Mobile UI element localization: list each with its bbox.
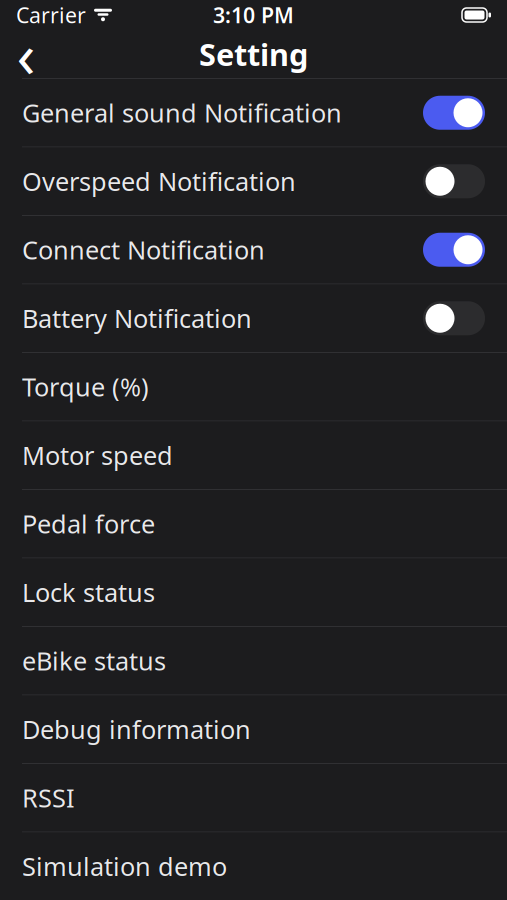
button[interactable]: RSSI xyxy=(0,764,507,831)
button[interactable]: Torque (%) xyxy=(0,353,507,420)
staticText: eBike status xyxy=(22,644,166,677)
staticText: 3:10 PM xyxy=(213,1,294,29)
button[interactable]: Connect Notification xyxy=(0,216,507,283)
button[interactable]: General sound Notification xyxy=(0,79,507,146)
staticText: Lock status xyxy=(22,575,155,609)
button[interactable]: eBike status xyxy=(0,627,507,694)
staticText: ‹ xyxy=(16,13,35,95)
button[interactable]: Debug information xyxy=(0,695,507,763)
staticText: Setting xyxy=(199,34,308,74)
staticText: Overspeed Notification xyxy=(22,164,296,198)
button[interactable]: Overspeed Notification xyxy=(0,147,507,215)
staticText: General sound Notification xyxy=(22,96,342,129)
staticText: Pedal force xyxy=(22,507,155,540)
staticText: Torque (%) xyxy=(22,370,149,403)
button[interactable]: Simulation demo xyxy=(0,832,507,900)
staticText: RSSI xyxy=(22,781,75,814)
staticText: Debug information xyxy=(22,712,251,746)
staticText: Carrier xyxy=(16,1,86,29)
button[interactable]: Battery Notification xyxy=(0,284,507,352)
staticText: Simulation demo xyxy=(22,849,227,883)
button[interactable]: Motor speed xyxy=(0,421,507,489)
button[interactable]: Lock status xyxy=(0,558,507,626)
staticText: Connect Notification xyxy=(22,233,265,266)
button[interactable]: Pedal force xyxy=(0,490,507,557)
staticText: Battery Notification xyxy=(22,301,252,335)
staticText: Motor speed xyxy=(22,438,173,472)
button[interactable]: Back xyxy=(4,32,48,76)
